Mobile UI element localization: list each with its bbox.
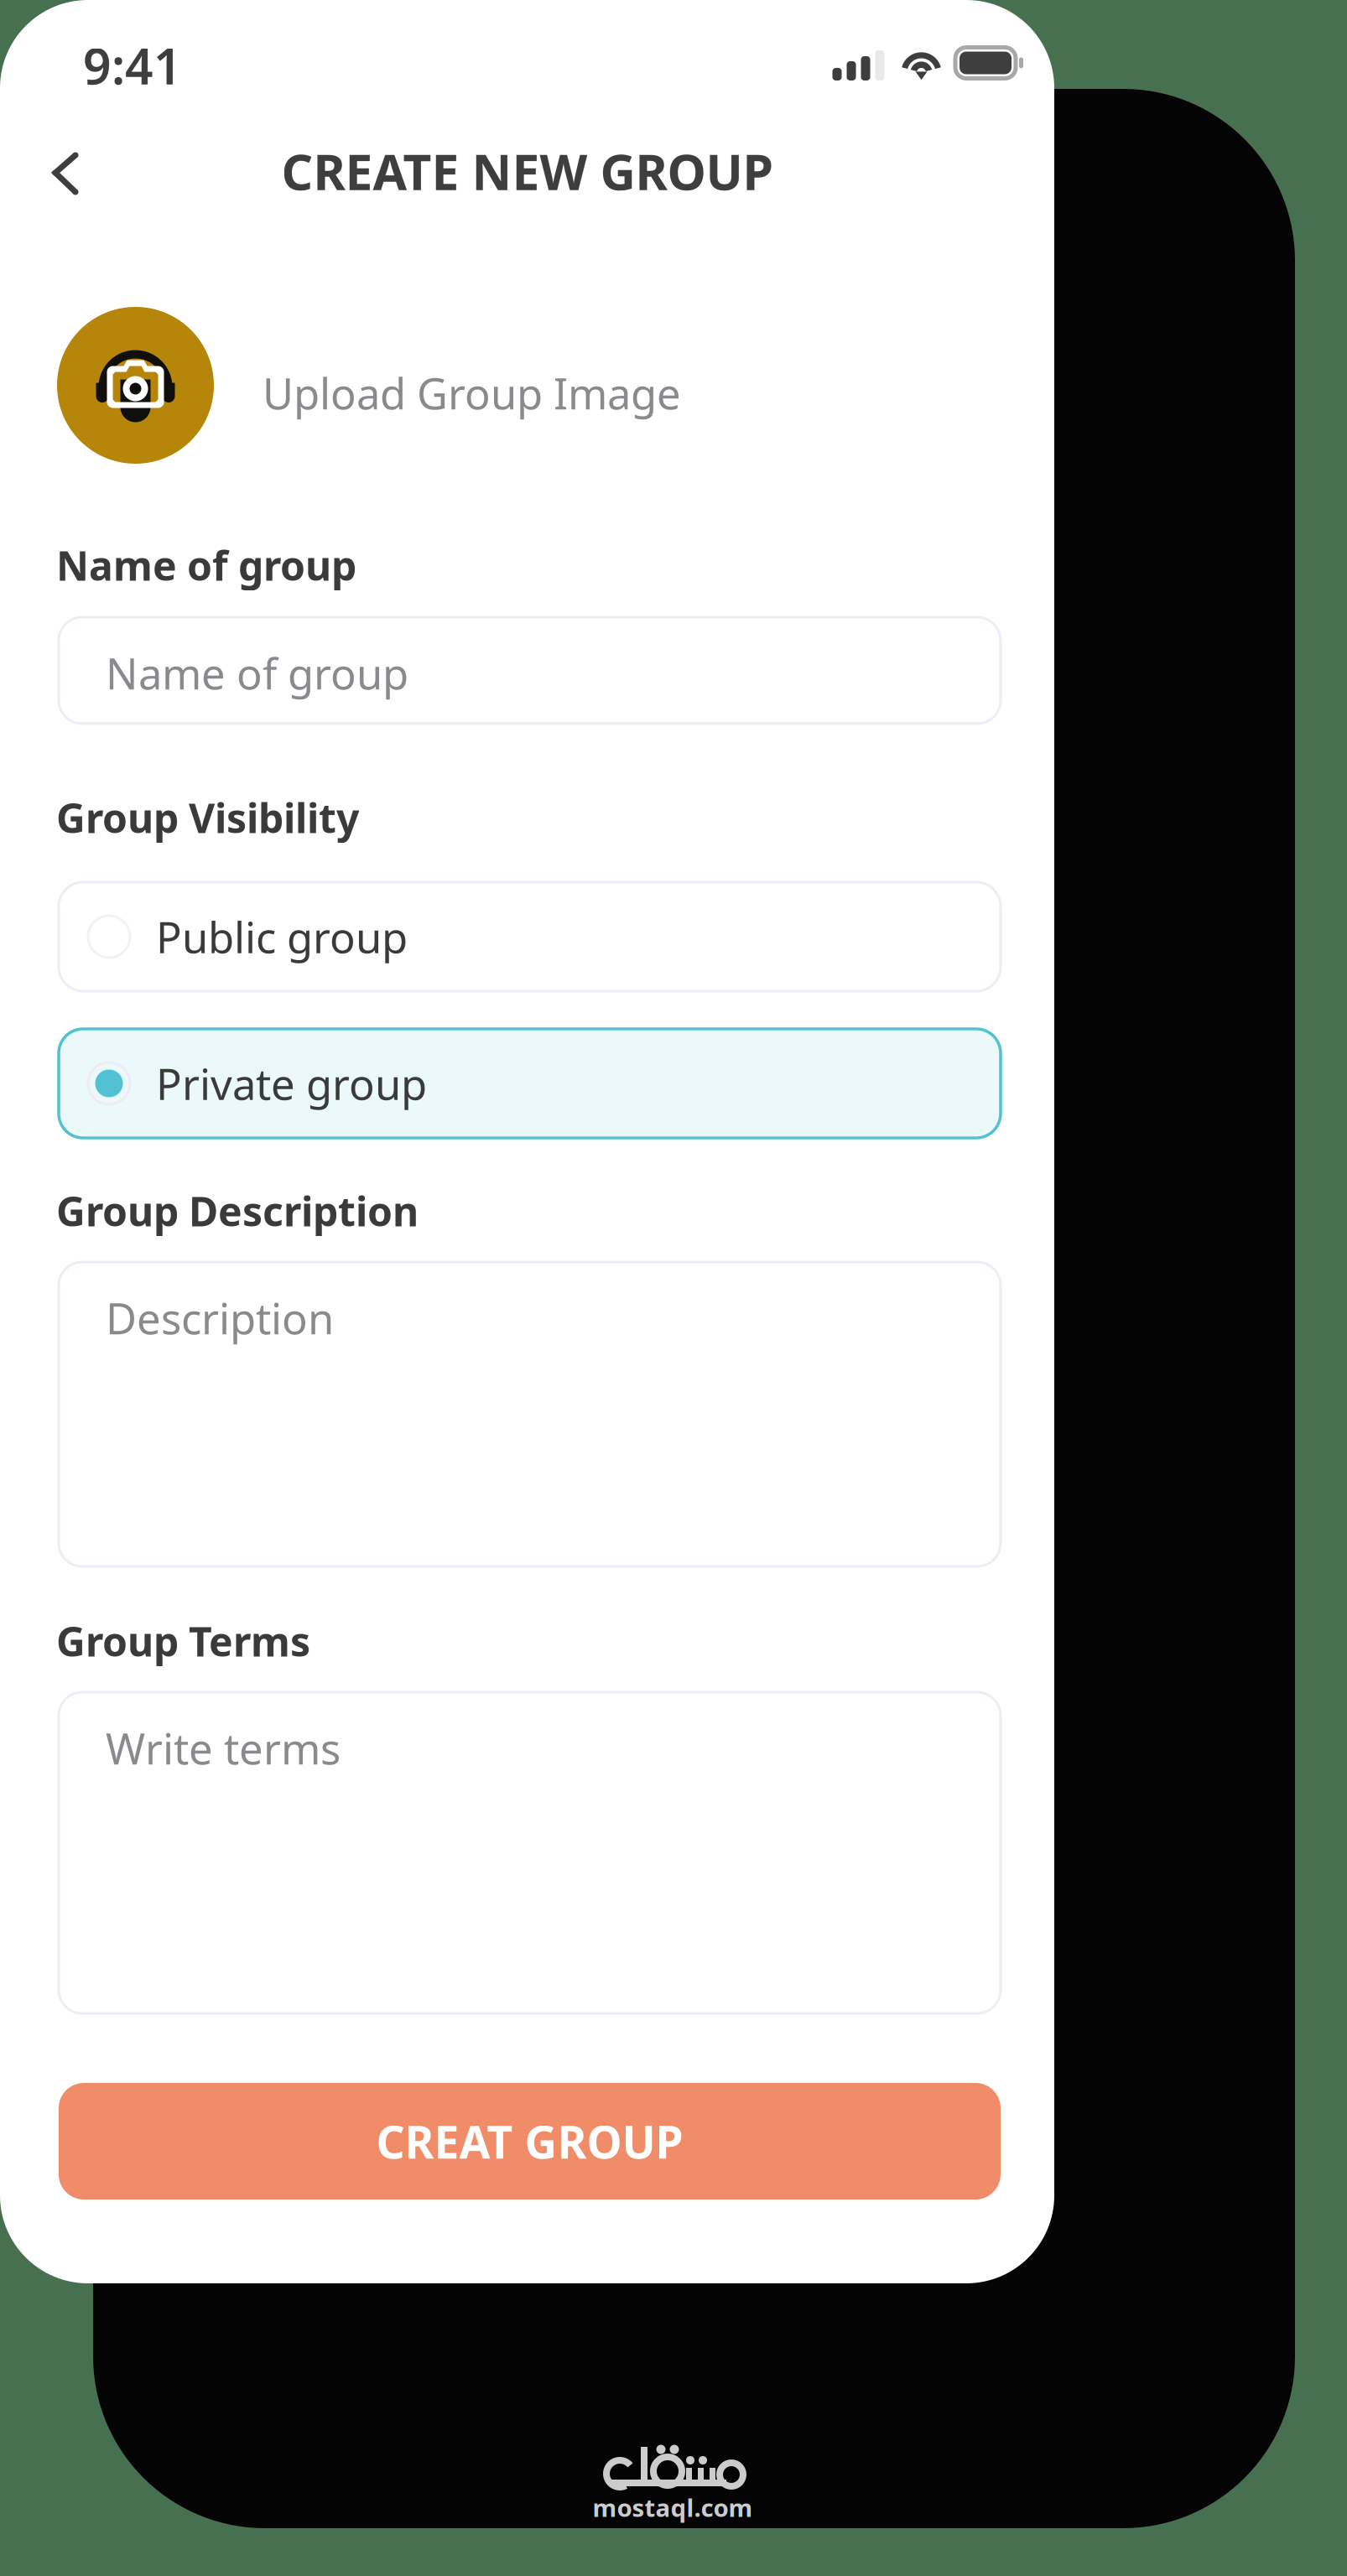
- staticText: Upload Group Image: [263, 365, 681, 421]
- staticText: Group Terms: [56, 1614, 310, 1668]
- button[interactable]: Upload Group Image: [57, 307, 999, 464]
- staticText: Write terms: [106, 1720, 341, 1776]
- staticText: 9:41: [83, 33, 182, 98]
- button[interactable]: Public group: [59, 882, 1001, 991]
- button[interactable]: Back: [28, 127, 103, 220]
- button[interactable]: CREAT GROUP: [59, 2083, 1001, 2199]
- button[interactable]: Description: [59, 1262, 1001, 1566]
- button[interactable]: Private group: [59, 1029, 1001, 1138]
- staticText: Private group: [156, 1055, 427, 1112]
- staticText: Name of group: [106, 645, 408, 701]
- staticText: Public group: [156, 908, 408, 965]
- staticText: CREATE NEW GROUP: [281, 138, 773, 204]
- button[interactable]: Name of group: [59, 617, 1001, 724]
- staticText: Group Visibility: [56, 791, 359, 844]
- staticText: Description: [106, 1290, 334, 1346]
- button[interactable]: Write terms: [59, 1692, 1001, 2013]
- staticText: CREAT GROUP: [376, 2112, 683, 2171]
- staticText: mostaql.com: [593, 2491, 753, 2524]
- staticText: Name of group: [56, 538, 356, 592]
- staticText: Group Description: [56, 1184, 419, 1237]
